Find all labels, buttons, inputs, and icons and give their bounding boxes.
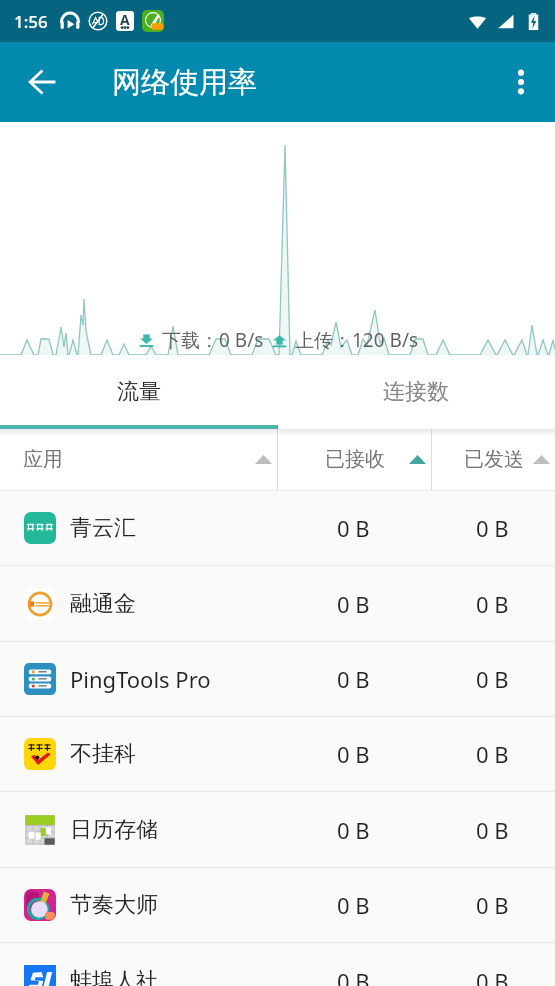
button[interactable]: PingTools Pro bbox=[0, 641, 555, 716]
staticText: PingTools Pro bbox=[70, 664, 211, 694]
staticText: 0 B bbox=[476, 815, 509, 845]
button[interactable]: Back bbox=[14, 54, 70, 110]
staticText: 网络使用率 bbox=[112, 64, 257, 101]
button[interactable]: 节奏大师 bbox=[0, 867, 555, 942]
button[interactable]: 已接收 bbox=[278, 429, 431, 490]
staticText: 不挂科 bbox=[70, 740, 136, 768]
staticText: 0 B bbox=[337, 589, 370, 619]
staticText: 融通金 bbox=[70, 590, 136, 618]
staticText: 已发送 bbox=[464, 447, 524, 472]
staticText: 0 B bbox=[337, 890, 370, 920]
staticText: 0 B bbox=[476, 966, 509, 986]
staticText: 蚌埠人社 bbox=[70, 967, 158, 986]
staticText: 已接收 bbox=[325, 447, 385, 472]
staticText: 青云汇 bbox=[70, 514, 136, 542]
staticText: 0 B bbox=[337, 513, 370, 543]
button[interactable]: 应用 bbox=[0, 429, 277, 490]
staticText: 日历存储 bbox=[70, 816, 158, 844]
button[interactable]: More options bbox=[495, 56, 547, 108]
staticText: 下载：0 B/s bbox=[162, 327, 264, 353]
staticText: 0 B bbox=[476, 739, 509, 769]
staticText: 1:56 bbox=[14, 10, 48, 33]
button[interactable]: 连接数 bbox=[277, 355, 555, 429]
staticText: 0 B bbox=[337, 815, 370, 845]
staticText: 0 B bbox=[476, 890, 509, 920]
button[interactable]: 流量 bbox=[0, 355, 277, 429]
staticText: 连接数 bbox=[383, 378, 449, 406]
staticText: 0 B bbox=[476, 589, 509, 619]
button[interactable]: 青云汇 bbox=[0, 490, 555, 565]
staticText: 0 B bbox=[337, 664, 370, 694]
button[interactable]: 不挂科 bbox=[0, 716, 555, 791]
button[interactable]: 蚌埠人社 bbox=[0, 942, 555, 986]
staticText: 0 B bbox=[337, 966, 370, 986]
staticText: 0 B bbox=[476, 513, 509, 543]
button[interactable]: 融通金 bbox=[0, 565, 555, 641]
staticText: A bbox=[120, 10, 130, 29]
staticText: 节奏大师 bbox=[70, 891, 158, 919]
staticText: 0 B bbox=[337, 739, 370, 769]
staticText: 流量 bbox=[117, 378, 161, 406]
staticText: 上传：120 B/s bbox=[295, 327, 419, 353]
staticText: 应用 bbox=[23, 447, 63, 472]
button[interactable]: 日历存储 bbox=[0, 791, 555, 867]
button[interactable]: 已发送 bbox=[432, 429, 555, 490]
staticText: 0 B bbox=[476, 664, 509, 694]
